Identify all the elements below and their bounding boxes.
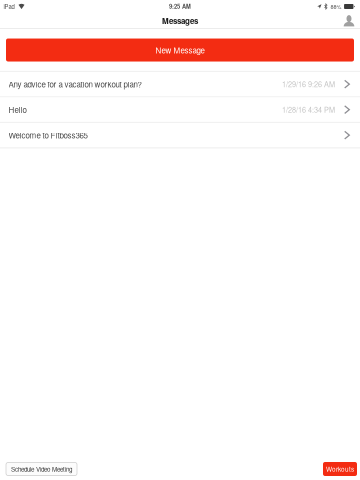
button[interactable]: Workouts bbox=[323, 462, 357, 476]
staticText: iPad bbox=[3, 2, 14, 11]
staticText: 1/28/16 4:34 PM bbox=[282, 104, 335, 115]
button[interactable]: Hello bbox=[0, 97, 360, 123]
staticText: 1/29/16 9:26 AM bbox=[282, 79, 335, 89]
staticText: Any advice for a vacation workout plan? bbox=[8, 78, 141, 90]
staticText: Welcome to Fitboss365 bbox=[8, 129, 87, 141]
staticText: 9:25 AM bbox=[169, 2, 191, 11]
staticText: Messages bbox=[162, 15, 198, 26]
button[interactable]: Welcome to Fitboss365 bbox=[0, 123, 360, 148]
staticText: New Message bbox=[155, 44, 204, 56]
staticText: 88% bbox=[330, 2, 341, 10]
staticText: Workouts bbox=[326, 464, 354, 474]
button[interactable]: Account bbox=[341, 13, 357, 28]
button[interactable]: Any advice for a vacation workout plan? bbox=[0, 72, 360, 97]
button[interactable]: Schedule Video Meeting bbox=[6, 462, 77, 475]
staticText: Hello bbox=[8, 104, 26, 115]
button[interactable]: New Message bbox=[6, 38, 354, 61]
staticText: Schedule Video Meeting bbox=[11, 464, 72, 473]
